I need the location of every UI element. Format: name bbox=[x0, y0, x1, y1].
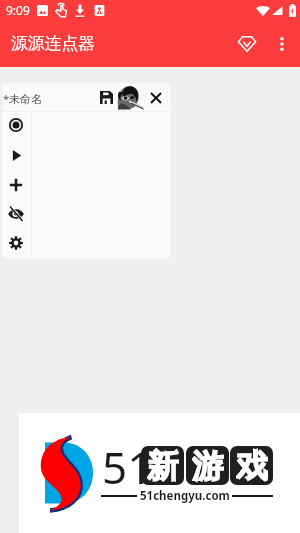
staticText: 9:09 bbox=[6, 2, 30, 18]
button[interactable]: Premium bbox=[230, 27, 263, 60]
staticText: 51chengyu.com bbox=[140, 488, 230, 504]
staticText: 游 bbox=[192, 446, 224, 485]
staticText: 新 bbox=[147, 446, 179, 485]
button[interactable]: Play bbox=[2, 141, 30, 169]
staticText: *未命名 bbox=[3, 91, 43, 106]
button[interactable]: More options bbox=[266, 28, 297, 59]
staticText: 51 bbox=[102, 437, 153, 497]
button[interactable]: Settings bbox=[2, 229, 30, 257]
button[interactable]: Close bbox=[146, 88, 165, 107]
button[interactable]: Save bbox=[97, 88, 116, 107]
button[interactable]: Record bbox=[2, 111, 30, 139]
staticText: 源源连点器 bbox=[11, 33, 95, 54]
button[interactable]: Hide bbox=[2, 199, 30, 227]
staticText: 戏 bbox=[236, 446, 268, 485]
button[interactable]: Add bbox=[2, 171, 30, 199]
